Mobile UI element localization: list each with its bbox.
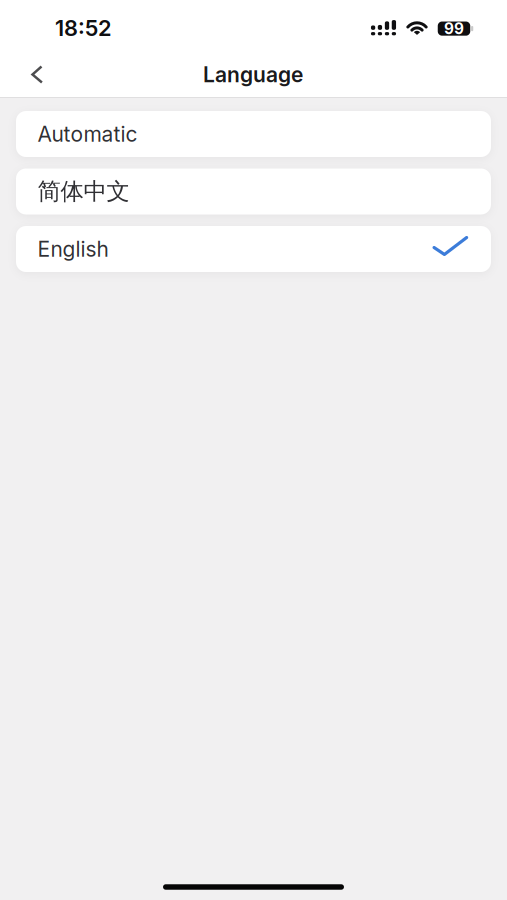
staticText: 简体中文 xyxy=(37,177,129,206)
staticText: Language xyxy=(203,62,303,87)
staticText: Automatic xyxy=(37,121,137,147)
button[interactable]: 简体中文 xyxy=(16,168,491,214)
staticText: 18:52 xyxy=(55,15,112,41)
button[interactable]: Back xyxy=(20,59,64,89)
button[interactable]: Automatic xyxy=(16,111,491,157)
button[interactable]: English xyxy=(16,226,491,272)
staticText: 99 xyxy=(444,19,464,38)
staticText: English xyxy=(37,236,108,262)
